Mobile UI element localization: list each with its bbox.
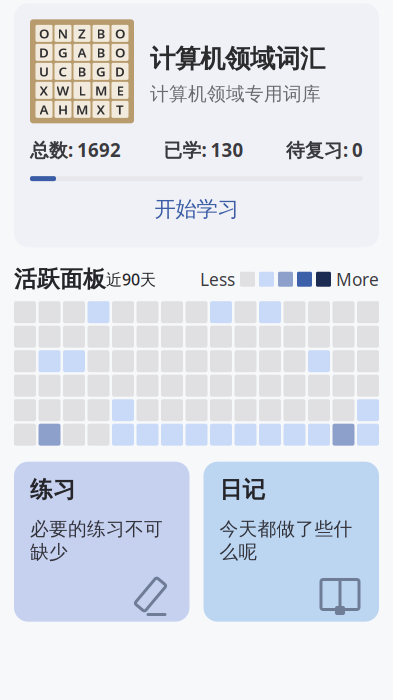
staticText: 计算机领域词汇 bbox=[150, 43, 325, 74]
staticText: 待复习: bbox=[286, 137, 348, 162]
staticText: G bbox=[58, 43, 68, 61]
staticText: B bbox=[77, 62, 86, 80]
staticText: X bbox=[96, 100, 105, 118]
staticText: 练习 bbox=[30, 476, 76, 504]
staticText: 开始学习 bbox=[154, 196, 238, 222]
staticText: 近90天 bbox=[106, 269, 156, 290]
staticText: U bbox=[39, 62, 49, 80]
staticText: 总数: bbox=[30, 137, 73, 162]
staticText: A bbox=[77, 43, 86, 61]
staticText: L bbox=[78, 81, 85, 99]
staticText: D bbox=[39, 43, 49, 61]
staticText: B bbox=[96, 24, 105, 42]
staticText: O bbox=[115, 24, 125, 42]
staticText: C bbox=[58, 62, 67, 80]
staticText: Z bbox=[78, 24, 86, 42]
staticText: A bbox=[39, 100, 48, 118]
staticText: O bbox=[115, 43, 125, 61]
staticText: B bbox=[96, 43, 105, 61]
button[interactable]: 练习 bbox=[14, 462, 189, 622]
staticText: M bbox=[76, 100, 88, 118]
staticText: M bbox=[95, 81, 107, 99]
staticText: G bbox=[96, 62, 106, 80]
staticText: 必要的练习不可缺少 bbox=[30, 518, 163, 564]
staticText: More bbox=[336, 268, 379, 291]
staticText: O bbox=[39, 24, 49, 42]
staticText: W bbox=[56, 81, 69, 99]
staticText: X bbox=[39, 81, 48, 99]
staticText: 活跃面板 bbox=[14, 265, 106, 293]
staticText: 0 bbox=[352, 137, 363, 162]
staticText: N bbox=[57, 24, 68, 42]
staticText: 今天都做了些什么呢 bbox=[219, 518, 352, 564]
staticText: 计算机领域专用词库 bbox=[150, 82, 321, 105]
staticText: 已学: bbox=[163, 137, 206, 162]
staticText: T bbox=[116, 100, 124, 118]
button[interactable]: 日记 bbox=[203, 462, 379, 622]
staticText: 130 bbox=[210, 137, 243, 162]
staticText: H bbox=[58, 100, 68, 118]
staticText: 日记 bbox=[219, 476, 265, 504]
button[interactable]: 开始学习 bbox=[30, 187, 363, 231]
staticText: E bbox=[116, 81, 123, 99]
staticText: D bbox=[115, 62, 125, 80]
staticText: 1692 bbox=[77, 137, 121, 162]
staticText: Less bbox=[200, 268, 235, 291]
